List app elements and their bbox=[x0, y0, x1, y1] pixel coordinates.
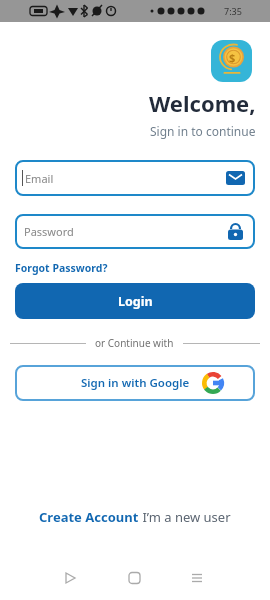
staticText: $ bbox=[229, 50, 236, 65]
button[interactable]: Password bbox=[15, 214, 255, 249]
staticText: Create Account bbox=[39, 508, 139, 526]
staticText: Login bbox=[118, 293, 153, 310]
staticText: or Continue with bbox=[95, 336, 174, 350]
button[interactable]: Login bbox=[15, 283, 255, 319]
button[interactable]: Email bbox=[15, 160, 255, 196]
staticText: 7:35 bbox=[224, 5, 242, 17]
staticText: I’m a new user bbox=[139, 508, 231, 526]
button[interactable]: Forgot Password? bbox=[15, 261, 108, 275]
staticText: Email bbox=[25, 171, 54, 186]
button[interactable]: Sign in with Google bbox=[15, 365, 255, 401]
staticText: Welcome, bbox=[149, 88, 256, 118]
staticText: Sign in to continue bbox=[150, 123, 256, 139]
staticText: Sign in with Google bbox=[81, 375, 190, 391]
staticText: Password bbox=[24, 224, 74, 239]
button[interactable]: Create Account bbox=[0, 508, 270, 526]
